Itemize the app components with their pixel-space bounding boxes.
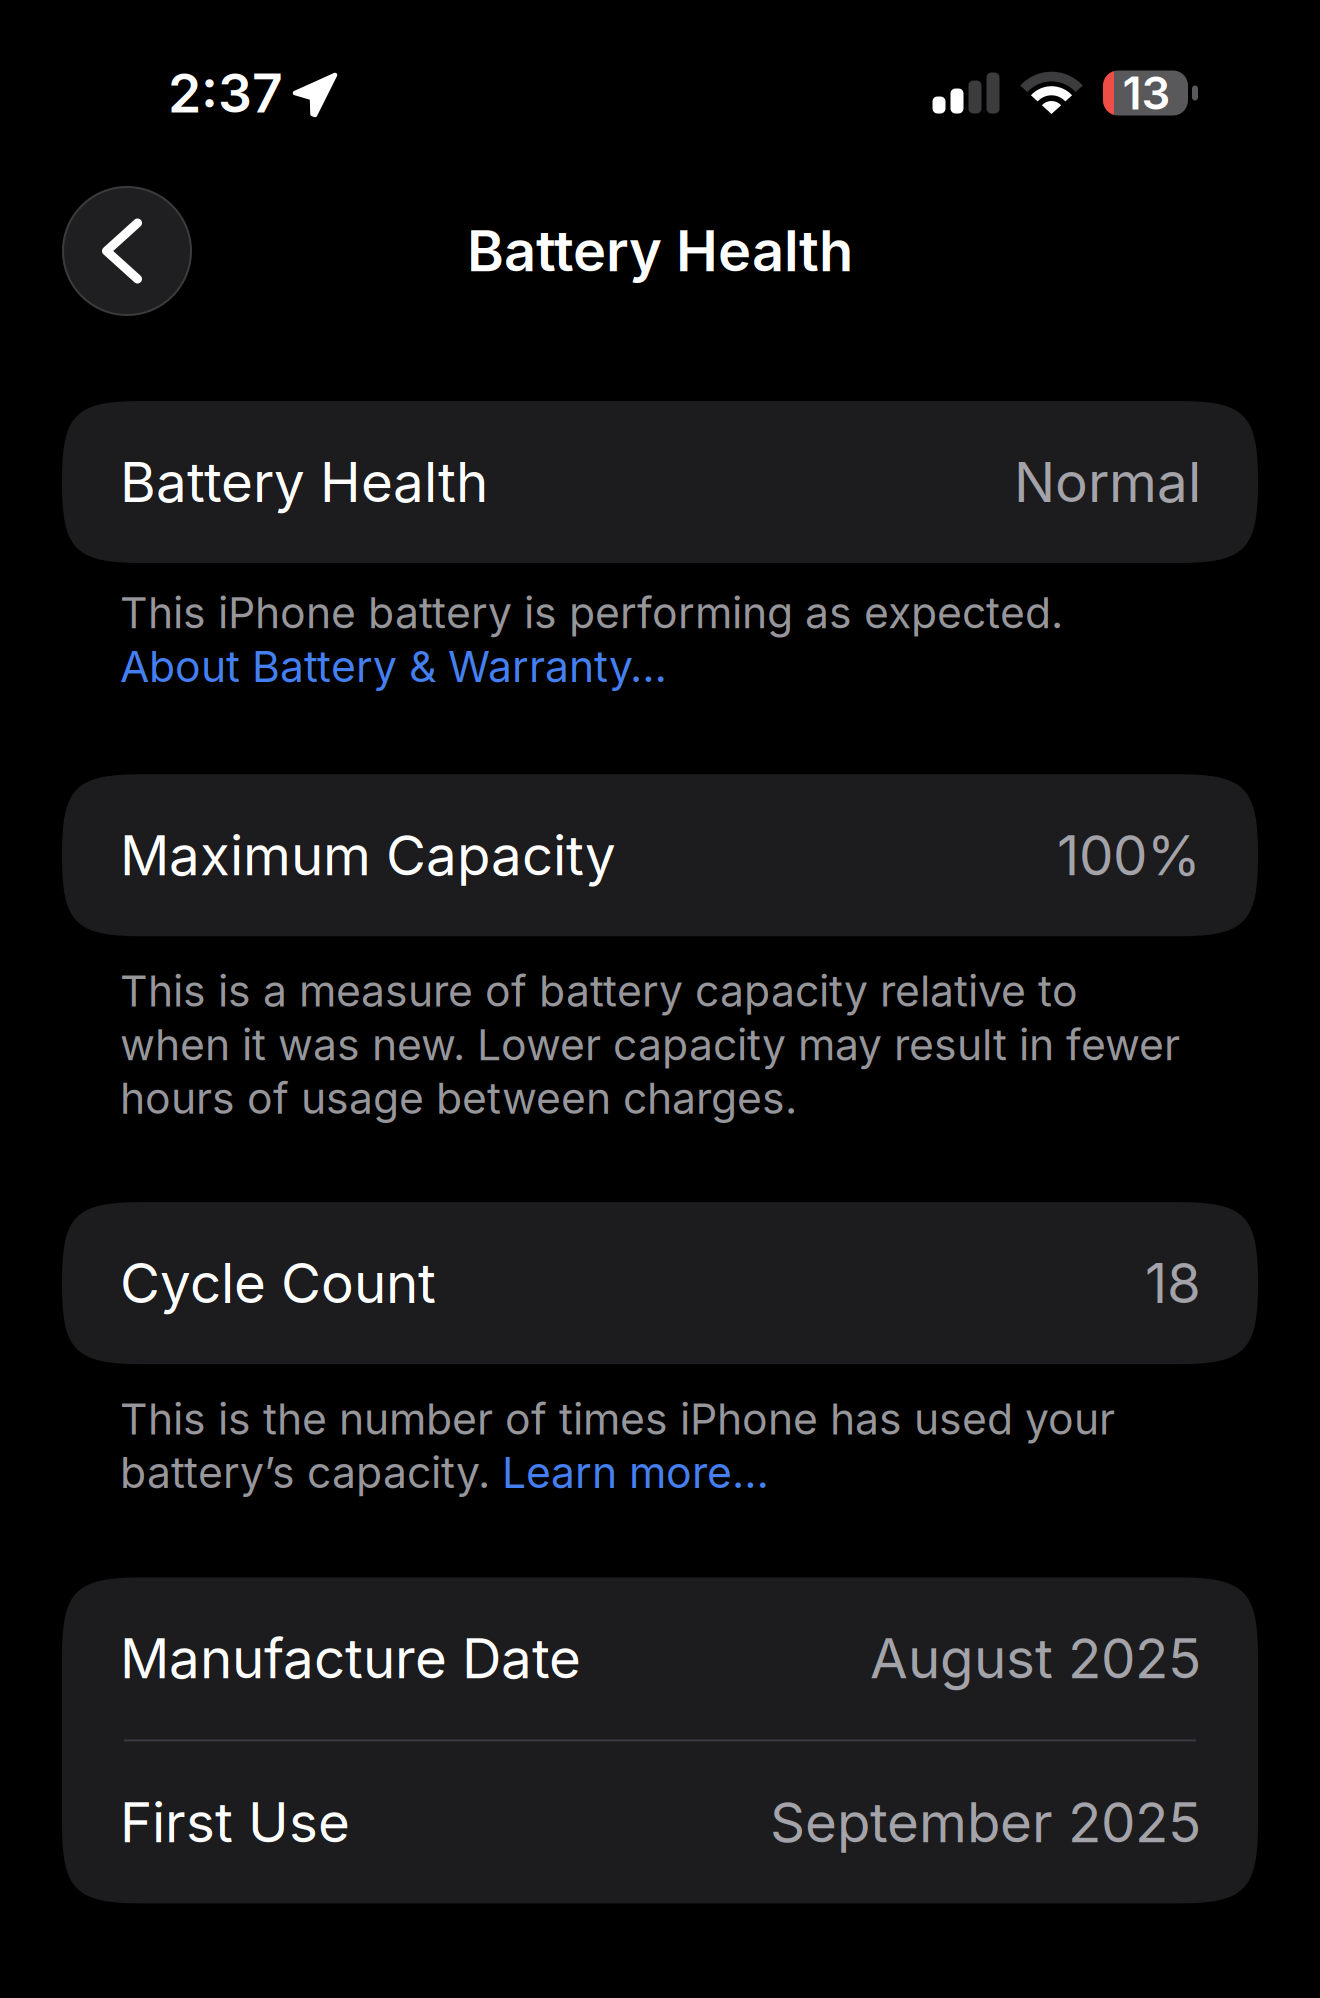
staticText: This is the number of times iPhone has u… xyxy=(120,1393,1115,1445)
staticText: hours of usage between charges. xyxy=(120,1072,797,1124)
staticText: Manufacture Date xyxy=(120,1625,581,1691)
staticText: September 2025 xyxy=(770,1789,1201,1855)
button[interactable]: Maximum Capacity xyxy=(62,774,1258,936)
button[interactable]: Manufacture Date xyxy=(62,1577,1258,1739)
staticText: First Use xyxy=(120,1789,350,1855)
button[interactable]: Battery Health xyxy=(62,401,1258,563)
staticText: Battery Health xyxy=(467,217,853,285)
staticText: About Battery & Warranty… xyxy=(120,641,667,692)
staticText: August 2025 xyxy=(870,1625,1201,1691)
staticText: Cycle Count xyxy=(120,1250,436,1316)
staticText: 100% xyxy=(1057,822,1201,888)
button[interactable]: Learn more… xyxy=(502,1447,769,1498)
staticText: This is a measure of battery capacity re… xyxy=(120,965,1078,1017)
button[interactable]: About Battery & Warranty… xyxy=(120,641,667,692)
staticText: 13 xyxy=(1122,66,1170,120)
staticText: This iPhone battery is performing as exp… xyxy=(120,587,1063,639)
staticText: 2:37 xyxy=(168,61,283,125)
button[interactable]: Back xyxy=(62,186,192,316)
staticText: Maximum Capacity xyxy=(120,822,616,888)
staticText: battery’s capacity. xyxy=(120,1447,502,1498)
staticText: 18 xyxy=(1145,1250,1201,1316)
staticText: Learn more… xyxy=(502,1447,769,1498)
button[interactable]: Cycle Count xyxy=(62,1202,1258,1364)
staticText: when it was new. Lower capacity may resu… xyxy=(120,1019,1180,1070)
button[interactable]: First Use xyxy=(62,1741,1258,1903)
staticText: Normal xyxy=(1014,449,1201,515)
staticText: Battery Health xyxy=(120,449,488,515)
